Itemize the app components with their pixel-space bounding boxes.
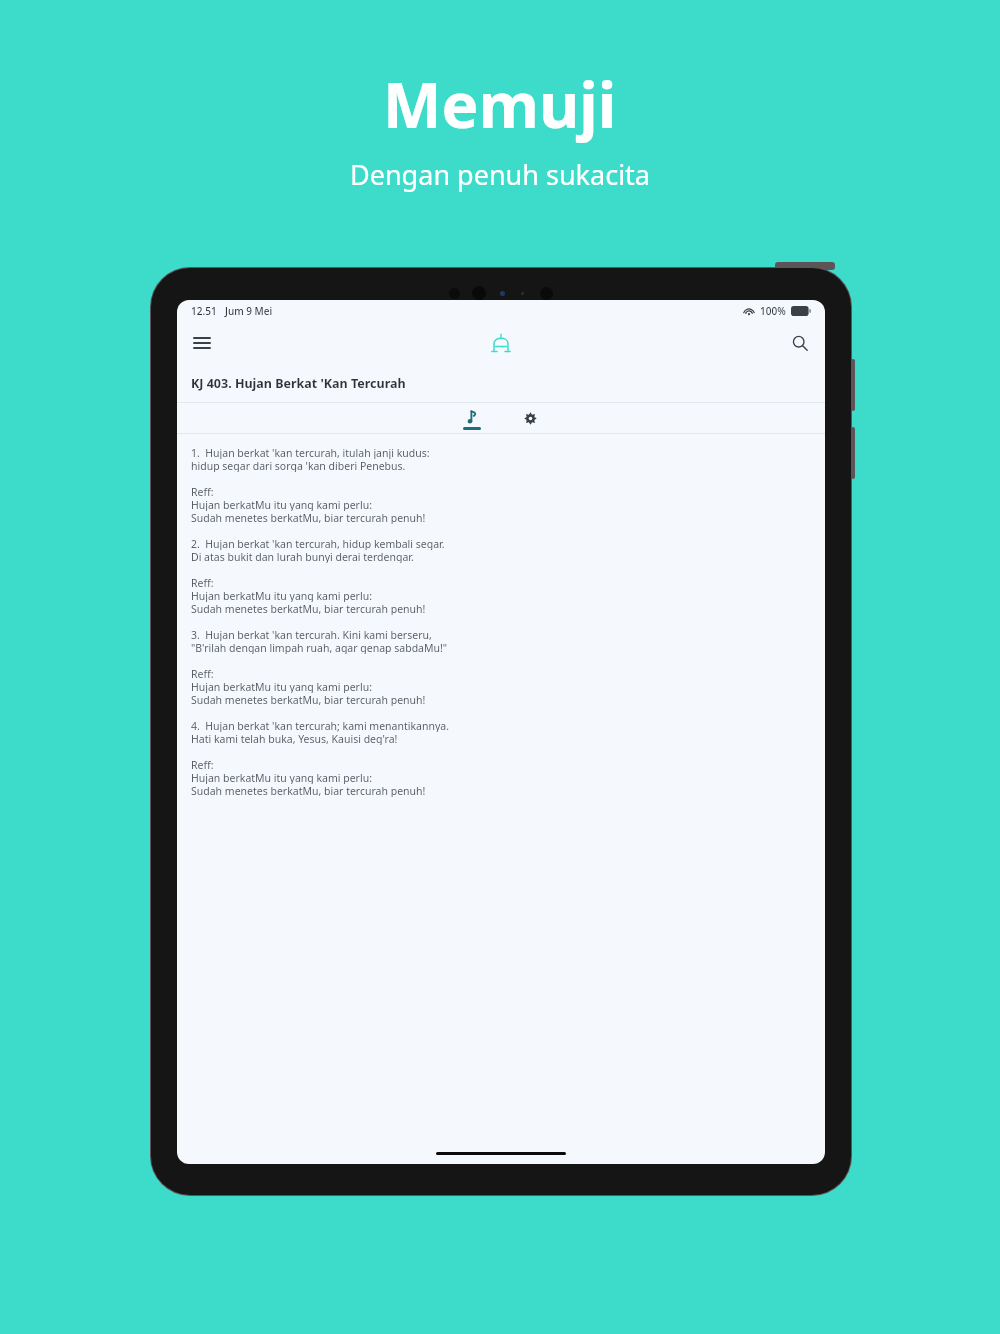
button[interactable]: Search (783, 326, 817, 360)
staticText: 2. Hujan berkat 'kan tercurah, hidup kem… (191, 537, 445, 550)
staticText: Jum 9 Mei (225, 304, 273, 318)
staticText: 100% (760, 304, 786, 318)
staticText: Reff: (191, 667, 214, 680)
staticText: Memuji (383, 62, 617, 146)
button[interactable]: Settings (510, 403, 550, 433)
staticText: Hujan berkatMu itu yang kami perlu: (191, 771, 372, 784)
staticText: Sudah menetes berkatMu, biar tercurah pe… (191, 511, 426, 524)
staticText: 4. Hujan berkat 'kan tercurah; kami mena… (191, 719, 449, 732)
staticText: Dengan penuh sukacita (350, 156, 650, 193)
staticText: Di atas bukit dan lurah bunyi derai terd… (191, 550, 414, 563)
button[interactable]: Menu (185, 326, 219, 360)
staticText: 1. Hujan berkat 'kan tercurah, itulah ja… (191, 446, 430, 459)
staticText: Sudah menetes berkatMu, biar tercurah pe… (191, 693, 426, 706)
button[interactable]: App logo (484, 326, 518, 360)
staticText: Hujan berkatMu itu yang kami perlu: (191, 680, 372, 693)
staticText: Sudah menetes berkatMu, biar tercurah pe… (191, 784, 426, 797)
staticText: Sudah menetes berkatMu, biar tercurah pe… (191, 602, 426, 615)
staticText: "B'rilah dengan limpah ruah, agar genap … (191, 641, 448, 654)
staticText: 12.51 (191, 304, 217, 318)
staticText: Hati kami telah buka, Yesus, Kauisi deg'… (191, 732, 398, 745)
staticText: Reff: (191, 758, 214, 771)
staticText: Reff: (191, 576, 214, 589)
button[interactable]: Lyrics tab (452, 403, 492, 433)
staticText: Reff: (191, 485, 214, 498)
staticText: KJ 403. Hujan Berkat 'Kan Tercurah (191, 375, 406, 392)
staticText: 3. Hujan berkat 'kan tercurah. Kini kami… (191, 628, 432, 641)
staticText: hidup segar dari sorga 'kan diberi Peneb… (191, 459, 406, 472)
staticText: Hujan berkatMu itu yang kami perlu: (191, 498, 372, 511)
staticText: Hujan berkatMu itu yang kami perlu: (191, 589, 372, 602)
